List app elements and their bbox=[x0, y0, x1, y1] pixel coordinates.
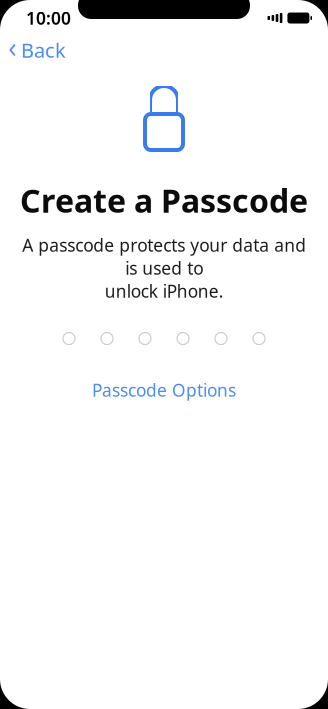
staticText: A passcode protects your data and is use… bbox=[22, 233, 306, 303]
button[interactable]: Passcode Options bbox=[78, 372, 250, 407]
staticText: Passcode Options bbox=[92, 378, 236, 401]
staticText: 10:00 bbox=[26, 6, 71, 29]
staticText: Create a Passcode bbox=[20, 179, 308, 221]
button[interactable]: Back bbox=[0, 31, 76, 69]
staticText: Back bbox=[21, 37, 66, 63]
